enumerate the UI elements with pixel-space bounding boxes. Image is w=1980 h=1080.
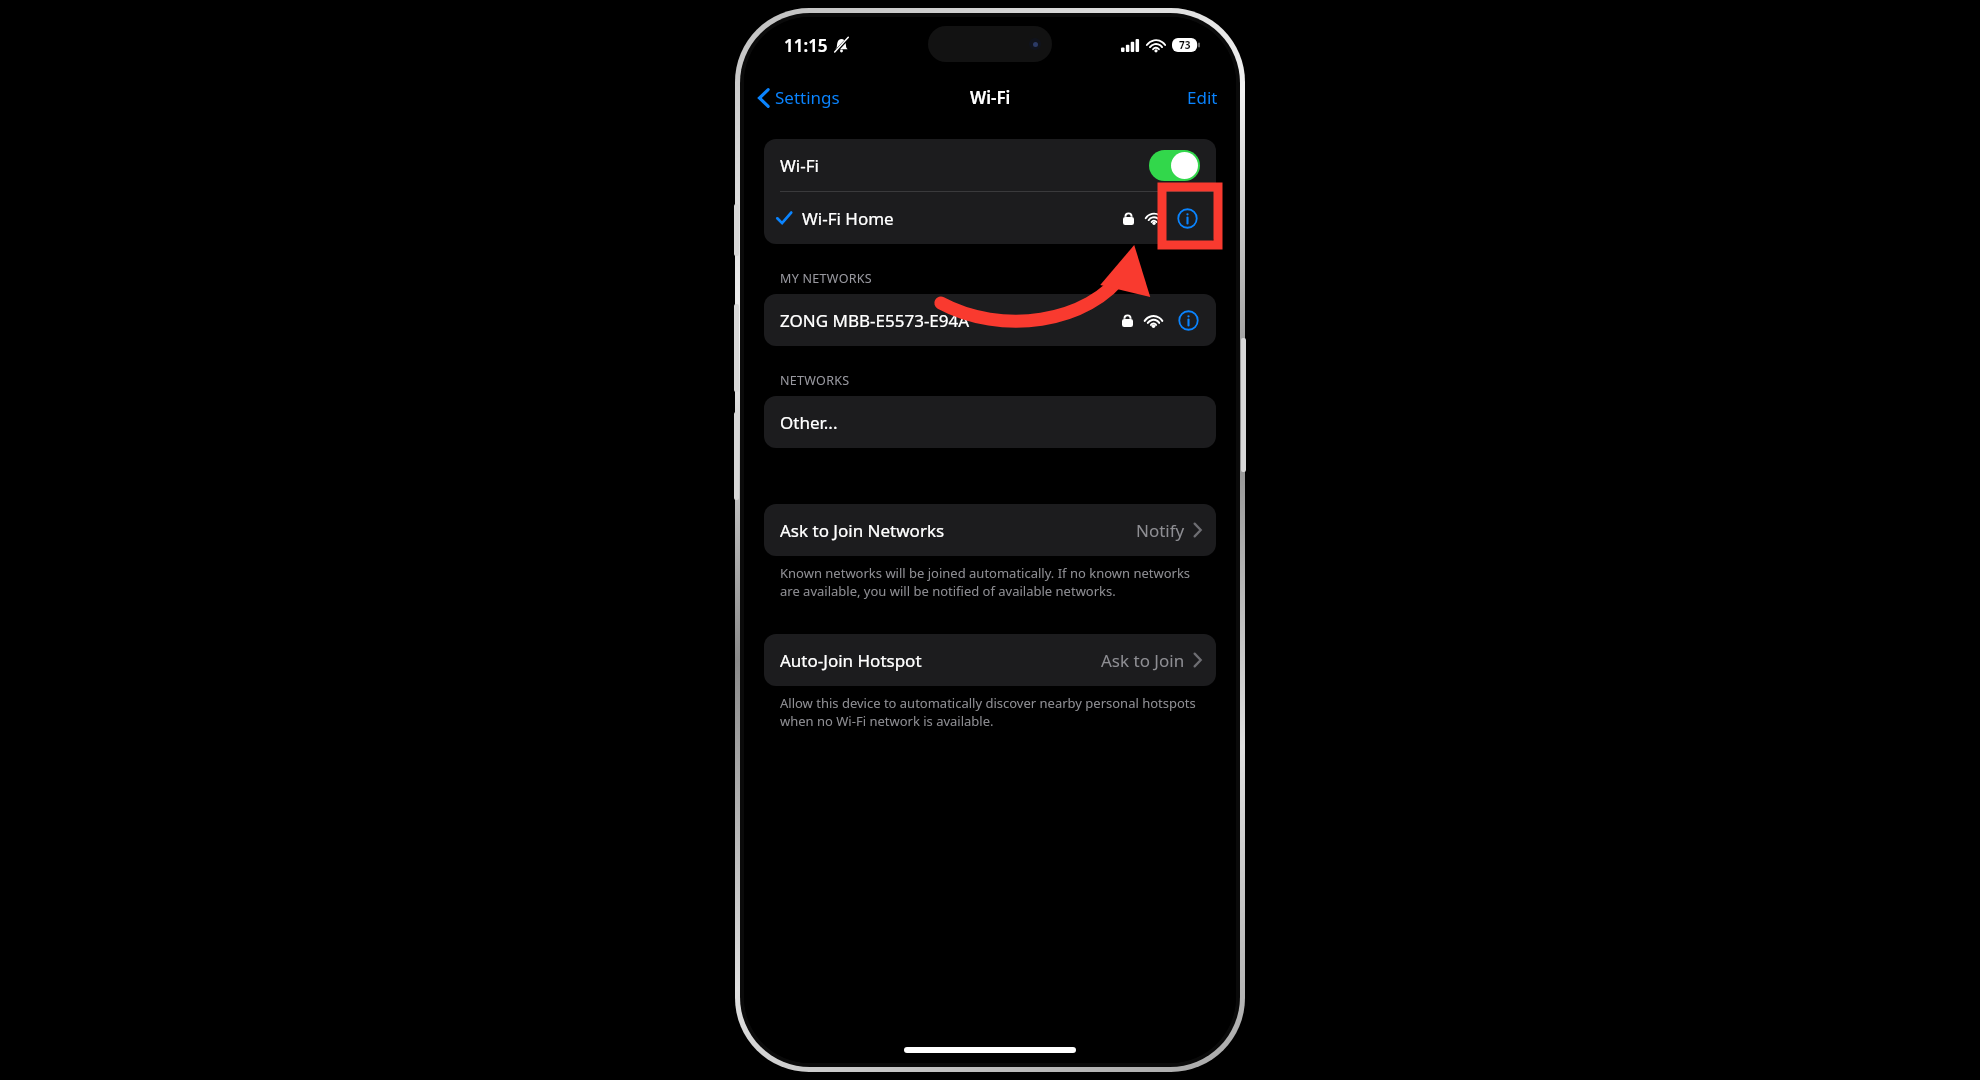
staticText: Settings: [775, 86, 840, 109]
button[interactable]: Network info: [1172, 203, 1202, 233]
button[interactable]: Ask to Join Networks: [764, 504, 1216, 556]
staticText: Wi-Fi: [780, 154, 819, 177]
staticText: Auto-Join Hotspot: [780, 649, 922, 672]
button[interactable]: Wi-Fi: [764, 139, 1216, 191]
button[interactable]: Edit: [1181, 82, 1224, 113]
staticText: ZONG MBB-E5573-E94A: [780, 309, 970, 332]
staticText: 11:15: [784, 34, 828, 57]
button[interactable]: Wi-Fi on: [1149, 150, 1200, 181]
button[interactable]: Other...: [764, 396, 1216, 448]
button[interactable]: ZONG MBB-E5573-E94A: [764, 294, 1216, 346]
button[interactable]: Auto-Join Hotspot: [764, 634, 1216, 686]
button[interactable]: Network info: [1174, 306, 1202, 334]
staticText: Allow this device to automatically disco…: [780, 694, 1204, 730]
staticText: MY NETWORKS: [780, 270, 873, 287]
staticText: Edit: [1187, 86, 1218, 109]
staticText: Known networks will be joined automatica…: [780, 564, 1204, 600]
button[interactable]: Settings: [752, 82, 846, 113]
staticText: Notify: [1136, 519, 1185, 542]
staticText: 73: [1179, 38, 1191, 52]
staticText: Wi-Fi: [970, 86, 1011, 109]
staticText: Wi-Fi Home: [802, 207, 894, 230]
staticText: NETWORKS: [780, 372, 850, 389]
button[interactable]: Wi-Fi Home: [764, 192, 1216, 244]
staticText: Ask to Join: [1101, 649, 1185, 672]
staticText: Ask to Join Networks: [780, 519, 945, 542]
staticText: Other...: [780, 411, 838, 434]
